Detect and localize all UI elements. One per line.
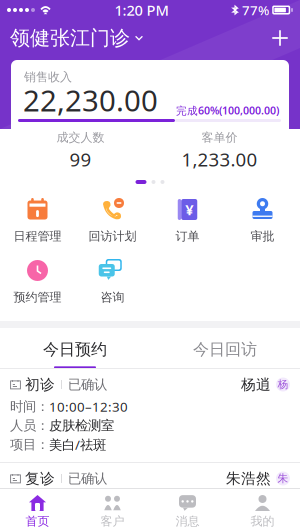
button[interactable]: 首页 xyxy=(0,489,75,532)
staticText: 朱浩然 xyxy=(226,469,271,487)
button[interactable]: 我的 xyxy=(225,489,300,532)
staticText: 销售收入 xyxy=(24,70,72,84)
button[interactable]: Add xyxy=(260,20,300,56)
staticText: 成交人数 xyxy=(56,130,104,145)
staticText: 朱 xyxy=(277,472,288,485)
staticText: 皮肤检测室 xyxy=(49,417,114,434)
button[interactable]: ¥ xyxy=(150,197,225,250)
button[interactable]: 领健张江门诊 xyxy=(0,20,153,56)
staticText: 复诊 xyxy=(25,469,55,487)
staticText: 1:20 PM xyxy=(114,0,168,20)
staticText: 客户 xyxy=(100,514,124,529)
button[interactable]: 回访计划 xyxy=(75,197,150,250)
button[interactable]: 初诊 xyxy=(0,369,300,462)
staticText: 1,233.00 xyxy=(181,147,257,172)
staticText: 项目： xyxy=(10,436,49,453)
button[interactable]: 审批 xyxy=(225,197,300,250)
staticText: 首页 xyxy=(25,514,49,529)
button[interactable]: 今日预约 xyxy=(0,328,150,368)
staticText: 77% xyxy=(242,1,269,19)
staticText: 22,230.00 xyxy=(23,80,158,119)
staticText: 杨 xyxy=(277,378,288,391)
staticText: 订单 xyxy=(175,229,199,244)
button[interactable]: 咨询 xyxy=(75,258,150,311)
button[interactable]: 日程管理 xyxy=(0,197,75,250)
staticText: 消息 xyxy=(175,514,199,529)
staticText: 已确认 xyxy=(68,376,107,393)
staticText: 99 xyxy=(69,147,91,172)
staticText: 初诊 xyxy=(25,375,55,393)
button[interactable]: 客户 xyxy=(75,489,150,532)
staticText: 人员： xyxy=(10,417,49,434)
staticText: 美白/祛斑 xyxy=(49,436,106,453)
staticText: 日程管理 xyxy=(13,229,61,244)
staticText: 10:00–12:30 xyxy=(49,398,128,415)
staticText: 完成60%(100,000.00) xyxy=(176,103,279,117)
staticText: 已确认 xyxy=(68,470,107,487)
staticText: 审批 xyxy=(250,229,274,244)
staticText: 领健张江门诊 xyxy=(10,26,130,50)
staticText: 今日预约 xyxy=(43,340,107,359)
staticText: ¥ xyxy=(185,200,193,219)
staticText: 回访计划 xyxy=(88,229,136,244)
button[interactable]: 预约管理 xyxy=(0,258,75,311)
button[interactable]: 今日回访 xyxy=(150,328,300,368)
staticText: 咨询 xyxy=(100,290,124,305)
staticText: 时间： xyxy=(10,398,49,415)
button[interactable]: 消息 xyxy=(150,489,225,532)
staticText: 今日回访 xyxy=(193,340,257,359)
staticText: 预约管理 xyxy=(13,290,61,305)
staticText: 客单价 xyxy=(201,130,237,145)
staticText: 我的 xyxy=(250,514,274,529)
button[interactable]: 复诊 xyxy=(0,463,300,493)
staticText: 杨逍 xyxy=(241,375,271,393)
